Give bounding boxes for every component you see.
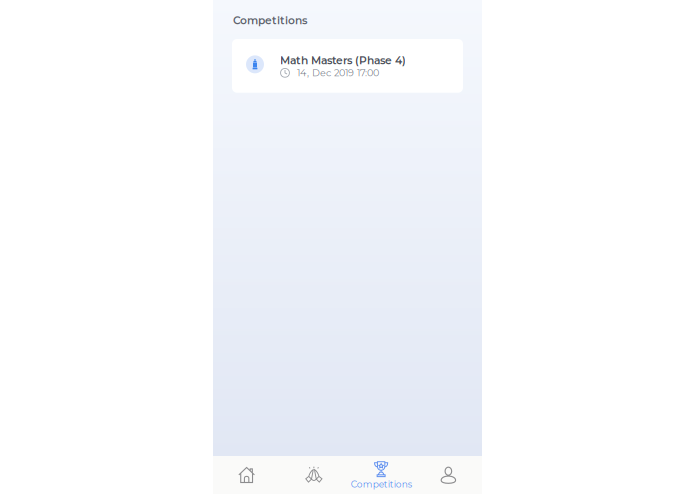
button[interactable]: Profile: [415, 457, 482, 493]
button[interactable]: Notifications: [280, 457, 347, 492]
staticText: 14, Dec 2019 17:00: [297, 67, 379, 79]
staticText: Competitions: [233, 14, 307, 27]
button[interactable]: Math Masters (Phase 4): [232, 39, 463, 93]
staticText: Competitions: [351, 479, 412, 490]
button[interactable]: Home: [213, 457, 280, 492]
staticText: Math Masters (Phase 4): [280, 54, 406, 67]
button[interactable]: Competitions: [347, 457, 415, 493]
